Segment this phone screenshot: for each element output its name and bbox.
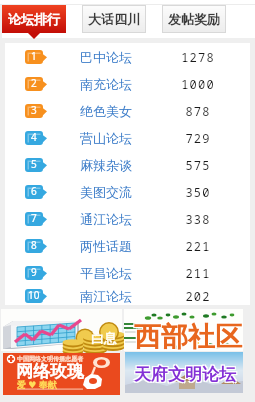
staticText: 南充论坛 bbox=[80, 76, 132, 92]
button[interactable]: 4 bbox=[5, 124, 250, 151]
staticText: 天府文明论坛 bbox=[133, 363, 235, 384]
staticText: 巴中论坛 bbox=[80, 49, 132, 65]
button[interactable]: 10 bbox=[5, 286, 250, 305]
staticText: 1000 bbox=[163, 76, 233, 92]
staticText: 2 bbox=[31, 76, 37, 90]
staticText: 4 bbox=[31, 130, 37, 144]
staticText: 绝色美女 bbox=[80, 103, 132, 119]
staticText: 西部社区 bbox=[133, 319, 241, 353]
button[interactable]: 8 bbox=[5, 232, 250, 259]
button[interactable]: 大话四川 bbox=[82, 5, 146, 33]
staticText: 营山论坛 bbox=[80, 130, 132, 146]
staticText: 麻辣杂谈 bbox=[80, 157, 132, 173]
staticText: 西部社区 bbox=[134, 320, 242, 354]
staticText: 575 bbox=[163, 157, 233, 173]
staticText: 天府文明论坛 bbox=[135, 363, 237, 384]
staticText: 338 bbox=[163, 211, 233, 227]
staticText: 美图交流 bbox=[80, 184, 132, 200]
button[interactable]: 7 bbox=[5, 205, 250, 232]
button[interactable]: 1 bbox=[5, 43, 250, 70]
staticText: 西部社区 bbox=[135, 321, 243, 355]
button[interactable]: 5 bbox=[5, 151, 250, 178]
staticText: 天府文明论坛 bbox=[133, 365, 235, 386]
staticText: 爱 ♥ 奉献 bbox=[17, 378, 57, 390]
staticText: 221 bbox=[163, 238, 233, 254]
button[interactable]: 发帖奖励 bbox=[162, 5, 226, 33]
staticText: 西部社区 bbox=[133, 321, 241, 355]
staticText: 211 bbox=[163, 265, 233, 281]
staticText: 西部社区 bbox=[135, 319, 243, 353]
staticText: 8 bbox=[31, 238, 37, 252]
button[interactable]: 2 bbox=[5, 70, 250, 97]
staticText: 论坛排行 bbox=[8, 11, 60, 27]
staticText: 9 bbox=[31, 265, 37, 279]
staticText: 通江论坛 bbox=[80, 211, 132, 227]
button[interactable]: 网络玫瑰 bbox=[3, 353, 120, 395]
button[interactable]: 论坛排行 bbox=[2, 5, 66, 33]
staticText: 5 bbox=[31, 157, 37, 171]
staticText: 10 bbox=[28, 288, 40, 302]
staticText: 6 bbox=[31, 184, 37, 198]
button[interactable]: 天府文明论坛 bbox=[125, 352, 243, 393]
staticText: 平昌论坛 bbox=[80, 265, 132, 281]
staticText: 3 bbox=[31, 103, 37, 117]
staticText: 878 bbox=[163, 103, 233, 119]
button[interactable]: 9 bbox=[5, 259, 250, 286]
staticText: 1278 bbox=[163, 49, 233, 65]
staticText: 1 bbox=[31, 49, 37, 63]
staticText: 白息 bbox=[91, 330, 117, 346]
staticText: 南江论坛 bbox=[80, 288, 132, 304]
staticText: 350 bbox=[163, 184, 233, 200]
staticText: 大话四川 bbox=[88, 11, 140, 27]
staticText: 中国网络文明传播志愿者 bbox=[17, 355, 83, 363]
button[interactable]: 3 bbox=[5, 97, 250, 124]
button[interactable]: 理财广告 bbox=[1, 309, 122, 351]
staticText: 网络玫瑰 bbox=[16, 361, 84, 382]
button[interactable]: 6 bbox=[5, 178, 250, 205]
staticText: 729 bbox=[163, 130, 233, 146]
staticText: 天府文明论坛 bbox=[135, 365, 237, 386]
staticText: 两性话题 bbox=[80, 238, 132, 254]
staticText: 发帖奖励 bbox=[168, 11, 220, 27]
button[interactable]: 西部社区 bbox=[124, 309, 243, 351]
staticText: 7 bbox=[31, 211, 37, 225]
staticText: 202 bbox=[163, 288, 233, 304]
staticText: 天府文明论坛 bbox=[134, 364, 236, 385]
